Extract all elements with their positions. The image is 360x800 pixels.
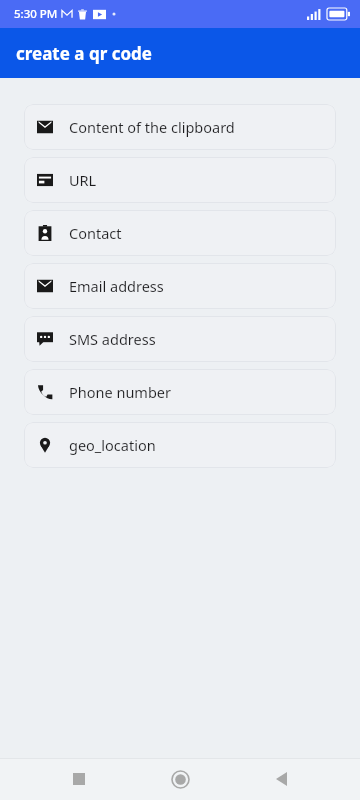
staticText: SMS address	[69, 329, 156, 349]
button[interactable]: Back	[259, 758, 303, 800]
staticText: geo_location	[69, 435, 156, 455]
staticText: URL	[69, 170, 97, 190]
staticText: Content of the clipboard	[69, 117, 235, 137]
button[interactable]: Email address	[24, 263, 336, 309]
staticText: create a qr code	[16, 42, 152, 65]
staticText: Email address	[69, 276, 164, 296]
button[interactable]: geo_location	[24, 422, 336, 468]
button[interactable]: Phone number	[24, 369, 336, 415]
staticText: Phone number	[69, 382, 171, 402]
button[interactable]: Content of the clipboard	[24, 104, 336, 150]
staticText: Contact	[69, 223, 122, 243]
button[interactable]: URL	[24, 157, 336, 203]
button[interactable]: SMS address	[24, 316, 336, 362]
staticText: 5:30 PM	[14, 6, 58, 22]
button[interactable]: Contact	[24, 210, 336, 256]
button[interactable]: Recent apps	[57, 758, 101, 800]
button[interactable]: Home	[158, 758, 202, 800]
